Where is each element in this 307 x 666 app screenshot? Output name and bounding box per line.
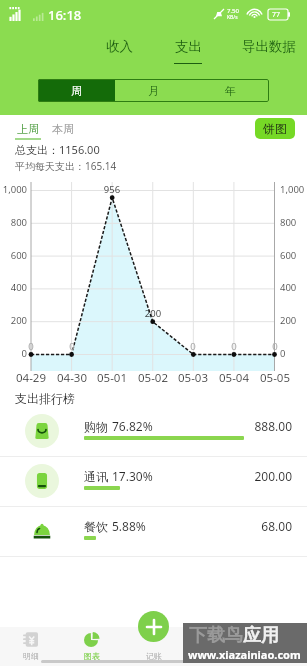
button[interactable]: 通讯	[0, 457, 307, 506]
button[interactable]: Add record	[138, 611, 169, 642]
button[interactable]: 上周	[15, 122, 41, 140]
staticText: 月	[148, 84, 159, 98]
button[interactable]: 预算	[184, 627, 245, 666]
staticText: 888.00	[200, 418, 292, 434]
button[interactable]: 明细	[0, 627, 61, 666]
staticText: 我的	[269, 651, 285, 661]
staticText: 购物	[84, 419, 108, 434]
staticText: 通讯	[84, 469, 108, 484]
staticText: 图表	[84, 651, 100, 661]
staticText: www.xiazainiao.com	[188, 647, 301, 662]
staticText: 05-05	[255, 370, 295, 386]
staticText: 05-03	[173, 370, 213, 386]
staticText: 1,000	[280, 183, 307, 196]
staticText: 16:18	[48, 6, 82, 24]
staticText: 7.50	[227, 7, 239, 15]
staticText: 0	[280, 347, 307, 360]
staticText: 应用	[243, 624, 279, 647]
button[interactable]: 饼图	[255, 118, 295, 139]
staticText: 600	[0, 249, 27, 262]
staticText: 17.30%	[112, 468, 153, 484]
button[interactable]: 收入	[87, 38, 151, 55]
staticText: 04-29	[11, 370, 51, 386]
staticText: 04-30	[52, 370, 92, 386]
staticText: 0	[57, 340, 87, 353]
staticText: 上周	[17, 122, 39, 136]
staticText: 76.82%	[112, 418, 153, 434]
staticText: 800	[280, 216, 307, 229]
staticText: 200	[280, 314, 307, 327]
staticText: 导出数据	[242, 38, 296, 55]
button[interactable]: 图表	[61, 627, 122, 666]
staticText: 1,000	[0, 183, 27, 196]
staticText: 支出	[175, 38, 202, 55]
staticText: 收入	[106, 38, 133, 55]
staticText: 400	[0, 281, 27, 294]
staticText: 餐饮	[84, 519, 108, 534]
staticText: 05-02	[133, 370, 173, 386]
staticText: 0	[0, 347, 27, 360]
staticText: KB/s	[227, 14, 238, 21]
staticText: 77	[272, 10, 281, 20]
staticText: 200	[0, 314, 27, 327]
staticText: 平均每天支出：165.14	[15, 159, 117, 173]
staticText: 800	[0, 216, 27, 229]
staticText: 年	[225, 84, 236, 98]
button[interactable]: 我的	[246, 627, 307, 666]
button[interactable]: 本周	[52, 122, 74, 136]
staticText: 周	[71, 84, 82, 98]
button[interactable]: 支出	[156, 38, 220, 64]
button[interactable]: 餐饮	[0, 507, 307, 556]
staticText: 200.00	[200, 468, 292, 484]
staticText: 0	[260, 340, 290, 353]
button[interactable]: 记账	[123, 627, 184, 666]
button[interactable]: 购物	[0, 407, 307, 456]
staticText: 400	[280, 281, 307, 294]
staticText: 饼图	[263, 121, 287, 136]
staticText: 68.00	[200, 518, 292, 534]
staticText: 5.88%	[112, 518, 146, 534]
staticText: 956	[97, 183, 127, 196]
staticText: 总支出：1156.00	[15, 142, 100, 157]
staticText: 05-01	[92, 370, 132, 386]
staticText: 明细	[23, 651, 39, 661]
staticText: 0	[219, 340, 249, 353]
button[interactable]: 导出数据	[237, 38, 301, 55]
staticText: 记账	[146, 651, 162, 661]
button[interactable]: 周	[38, 79, 115, 102]
staticText: 本周	[52, 122, 74, 136]
staticText: 0	[178, 340, 208, 353]
staticText: 200	[138, 307, 168, 320]
staticText: 0	[16, 340, 46, 353]
button[interactable]: 月	[115, 79, 192, 102]
staticText: 下载鸟	[189, 624, 243, 647]
staticText: 600	[280, 249, 307, 262]
button[interactable]: 年	[192, 79, 269, 102]
staticText: 预算	[207, 651, 223, 661]
staticText: 支出排行榜	[15, 391, 75, 406]
staticText: 05-04	[214, 370, 254, 386]
